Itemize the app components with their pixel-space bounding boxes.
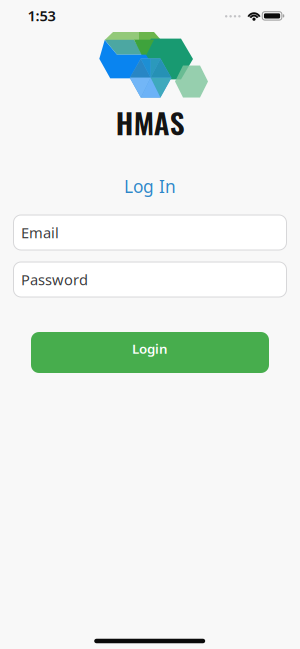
button[interactable]: Login xyxy=(31,332,269,373)
button[interactable]: Email xyxy=(13,215,286,250)
staticText: HMAS xyxy=(116,100,185,144)
staticText: Email xyxy=(21,223,59,242)
staticText: 1:53 xyxy=(27,6,55,25)
staticText: Login xyxy=(132,340,168,357)
staticText: Log In xyxy=(124,175,176,198)
button[interactable]: Password xyxy=(13,262,286,297)
staticText: Password xyxy=(21,270,88,289)
